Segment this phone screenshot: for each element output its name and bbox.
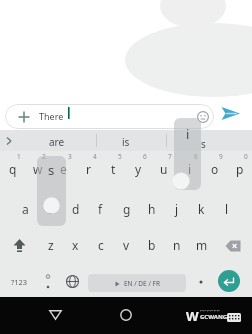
staticText: n [173,237,181,253]
staticText: i [188,161,192,177]
staticText: p [236,161,244,177]
button[interactable]: p [227,150,252,187]
button[interactable]: d [63,190,88,227]
staticText: s [48,161,55,179]
button[interactable]: e [51,150,76,187]
button[interactable]: k [189,190,214,227]
staticText: s [48,201,54,217]
staticText: 8 [194,152,198,161]
staticText: u [160,161,168,177]
staticText: GCWANG [200,313,228,321]
staticText: z [48,237,54,253]
staticText: w [33,161,43,177]
button[interactable]: l [214,190,239,227]
staticText: a [22,201,29,217]
staticText: y [135,161,142,177]
staticText: k [198,201,205,217]
staticText: 3 [68,152,72,161]
button[interactable]: z [38,226,63,263]
staticText: v [123,237,130,253]
staticText: e [60,161,67,177]
button[interactable] [40,300,70,330]
button[interactable]: w [25,150,50,187]
button[interactable] [214,227,252,264]
button[interactable]: s [38,190,63,227]
button[interactable] [0,130,18,151]
button[interactable]: a [13,190,38,227]
staticText: c [98,237,104,253]
staticText: j [175,201,179,217]
button[interactable] [111,300,141,330]
staticText: 7 [168,152,172,161]
button[interactable]: EN / DE / FR [88,274,186,292]
staticText: are [49,135,65,149]
staticText: t [111,161,116,177]
button[interactable]: j [164,190,189,227]
staticText: h [148,201,156,217]
staticText: W [186,307,199,325]
staticText: 5 [118,152,122,161]
staticText: is [122,135,130,149]
staticText: g [123,201,131,217]
staticText: d [72,201,80,217]
button[interactable]: s [197,135,210,152]
button[interactable]: f [88,190,113,227]
staticText: x [72,237,79,253]
button[interactable]: g [114,190,139,227]
staticText: 9 [219,152,223,161]
staticText: m [196,237,208,253]
button[interactable] [190,266,212,297]
button[interactable]: y [126,150,151,187]
button[interactable]: q [0,150,25,187]
staticText: i [186,125,190,143]
button[interactable]: r [76,150,101,187]
staticText: b [148,237,156,253]
button[interactable]: are [26,132,88,151]
staticText: EN / DE / FR [124,279,160,288]
button[interactable] [218,270,240,292]
staticText: r [86,161,91,177]
button[interactable]: m [189,226,214,263]
button[interactable]: o [202,150,227,187]
button[interactable]: x [63,226,88,263]
staticText: q [9,161,17,177]
button[interactable]: u [151,150,176,187]
staticText: 1 [17,152,21,161]
button[interactable]: ?123 [0,266,38,297]
staticText: 6 [143,152,147,161]
button[interactable]: n [164,226,189,263]
button[interactable]: i [177,150,202,187]
staticText: f [98,201,103,217]
button[interactable] [216,101,244,125]
button[interactable]: h [139,190,164,227]
button[interactable] [58,266,86,297]
staticText: ⌐⌐⌐⌐⌐⌐ [200,308,221,313]
button[interactable]: v [114,226,139,263]
staticText: There [39,110,64,122]
button[interactable] [5,104,214,129]
staticText: l [225,201,229,217]
staticText: ?123 [11,277,28,287]
button[interactable] [193,104,212,129]
staticText: 4 [93,152,97,161]
button[interactable]: b [139,226,164,263]
staticText: 0 [244,152,248,161]
staticText: 2 [42,152,46,161]
button[interactable]: c [88,226,113,263]
button[interactable]: is [98,132,154,151]
button[interactable] [13,104,35,129]
staticText: o [211,161,219,177]
button[interactable] [0,227,38,264]
button[interactable]: t [101,150,126,187]
staticText: s [201,137,206,151]
button[interactable] [38,266,58,297]
